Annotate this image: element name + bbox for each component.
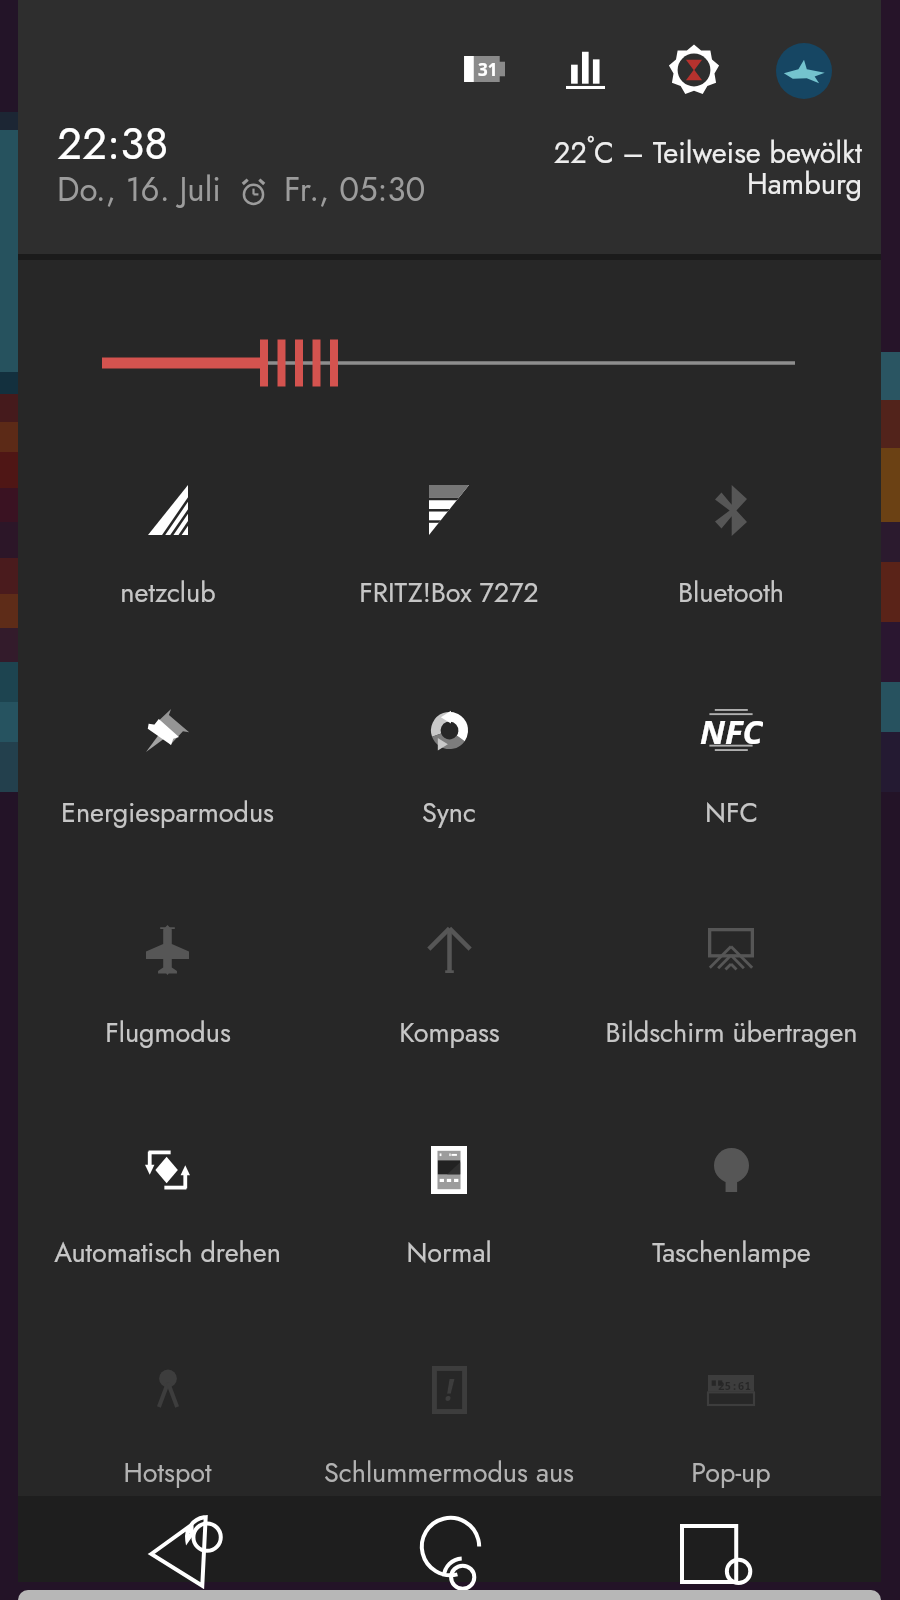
button[interactable]: ! [308,1349,590,1569]
staticText: FRITZ!Box 7272 [359,573,539,612]
button[interactable]: Taschenlampe [590,1129,872,1349]
button[interactable]: Back [149,1521,223,1587]
button[interactable]: Timer [667,44,721,96]
staticText: Pop-up [691,1453,771,1492]
staticText: Bluetooth [678,573,784,612]
staticText: netzclub [120,573,216,612]
button[interactable]: Bluetooth [590,469,872,689]
button[interactable]: Messenger [776,43,832,99]
staticText: ! [445,1369,454,1410]
button[interactable]: Automatisch drehen [27,1129,308,1349]
staticText: 22:38 [57,112,169,176]
staticText: Energiesparmodus [61,793,274,832]
button[interactable]: Normal [308,1129,590,1349]
staticText: Kompass [399,1013,500,1052]
button[interactable]: Energiesparmodus [27,689,308,909]
staticText: Fr., 05:30 [284,166,426,214]
staticText: Bildschirm übertragen [605,1013,858,1052]
staticText: Do., 16. Juli [57,166,221,214]
button[interactable]: Kompass [308,909,590,1129]
button[interactable]: Flugmodus [27,909,308,1129]
staticText: Taschenlampe [652,1233,811,1272]
staticText: Sync [422,793,476,832]
button[interactable]: NFC [590,689,872,909]
button[interactable]: Hotspot [27,1349,308,1569]
staticText: Hotspot [123,1453,212,1492]
staticText: Normal [406,1233,492,1272]
staticText: NFC [700,709,763,751]
button[interactable]: Brightness [18,323,881,403]
button[interactable]: netzclub [27,469,308,689]
staticText: Schlummermodus aus [324,1453,574,1492]
button[interactable]: Calendar [461,56,505,82]
staticText: 25:61 [718,1378,751,1393]
button[interactable]: Bildschirm übertragen [590,909,872,1129]
staticText: 22˚C – Teilweise bewölkt Hamburg [553,132,862,205]
staticText: NFC [705,793,758,832]
button[interactable]: Home [420,1517,481,1590]
button[interactable]: Statistics [566,51,605,89]
staticText: Automatisch drehen [54,1233,281,1272]
button[interactable]: FRITZ!Box 7272 [308,469,590,689]
button[interactable]: Sync [308,689,590,909]
button[interactable]: 25:61 [590,1349,872,1569]
staticText: 31 [478,58,498,81]
staticText: Flugmodus [105,1013,231,1052]
button[interactable]: Recent apps [680,1524,751,1584]
